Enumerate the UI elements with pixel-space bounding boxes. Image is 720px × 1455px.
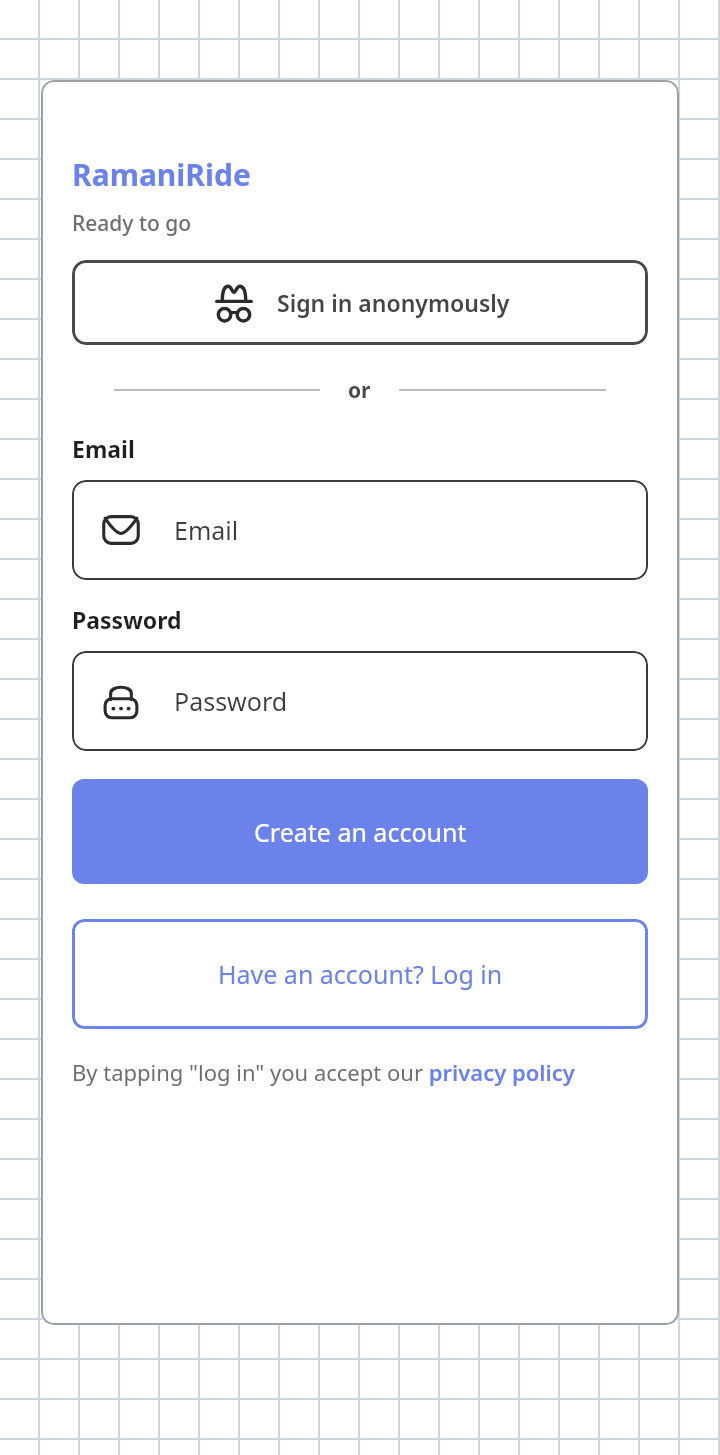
other: Password — [98, 678, 144, 724]
staticText: Password — [174, 684, 288, 718]
button[interactable]: Create an account — [72, 779, 648, 884]
staticText: Ready to go — [72, 209, 192, 238]
staticText: Password — [72, 604, 182, 635]
staticText: Create an account — [254, 815, 467, 849]
staticText: Email — [174, 513, 239, 547]
staticText: RamaniRide — [72, 154, 251, 195]
staticText: Have an account? Log in — [218, 957, 503, 991]
button[interactable]: By tapping "log in" you accept our priva… — [72, 1057, 648, 1087]
other: Incognito — [211, 280, 257, 326]
button[interactable]: Email — [72, 480, 648, 580]
staticText: Email — [72, 433, 135, 464]
other: Email — [98, 507, 144, 553]
button[interactable]: Have an account? Log in — [72, 919, 648, 1029]
button[interactable]: Incognito — [72, 260, 648, 345]
staticText: Sign in anonymously — [277, 287, 510, 318]
button[interactable]: Password — [72, 651, 648, 751]
staticText: or — [348, 376, 371, 405]
